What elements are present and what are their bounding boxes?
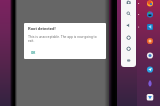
staticText: This is unacceptable. The app is now goi…: [28, 35, 102, 43]
button[interactable]: OK: [29, 49, 40, 56]
staticText: OK: [31, 51, 36, 55]
staticText: Root detected!: [28, 26, 56, 31]
